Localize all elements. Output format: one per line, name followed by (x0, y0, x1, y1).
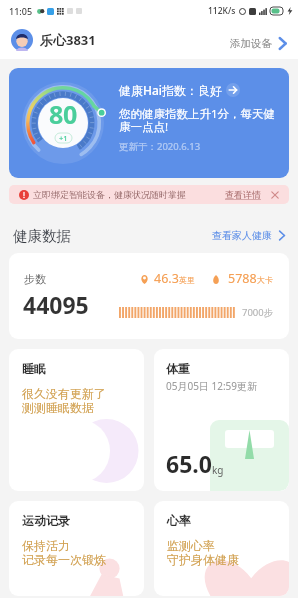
button[interactable]: 步数 (9, 253, 289, 339)
staticText: 查看家人健康 (212, 229, 272, 242)
staticText: 立即绑定智能设备，健康状况随时掌握 (33, 189, 186, 200)
button[interactable]: 添加设备 (230, 37, 290, 50)
staticText: 5788 (228, 270, 257, 287)
staticText: 健康Hai指数：良好 (119, 82, 223, 98)
staticText: 运动记录 (22, 513, 70, 528)
button[interactable]: 乐心3831 (11, 29, 96, 51)
staticText: 112K/s (208, 5, 236, 17)
button[interactable]: 查看详情 (225, 189, 261, 200)
staticText: 添加设备 (230, 37, 272, 50)
staticText: 44095 (23, 289, 89, 320)
staticText: 保持活力 记录每一次锻炼 (22, 538, 106, 567)
staticText: 05月05日 12:59更新 (166, 379, 258, 393)
staticText: 大卡 (257, 275, 273, 285)
staticText: 很久没有更新了 测测睡眠数据 (22, 386, 106, 415)
staticText: 11:05 (9, 5, 33, 17)
button[interactable]: 80 (9, 68, 289, 178)
other: Add device (277, 37, 290, 50)
staticText: 7000步 (242, 306, 274, 319)
staticText: +1 (59, 133, 68, 143)
staticText: 您的健康指数上升1分，每天健康一点点! (119, 106, 276, 134)
staticText: 英里 (179, 275, 195, 285)
button[interactable]: 查看家人健康 (212, 229, 288, 242)
staticText: 体重 (166, 361, 190, 376)
button[interactable]: 心率 (154, 501, 289, 596)
staticText: 健康数据 (13, 227, 71, 245)
button[interactable]: 立即绑定智能设备，健康状况随时掌握 (9, 185, 289, 204)
staticText: 乐心3831 (40, 31, 96, 49)
staticText: 80 (49, 97, 77, 131)
staticText: 心率 (167, 513, 191, 528)
button[interactable]: 睡眠 (9, 349, 144, 491)
button[interactable]: 体重 (154, 349, 289, 491)
staticText: kg (212, 463, 224, 477)
staticText: 更新于：2020.6.13 (119, 140, 201, 153)
button[interactable]: Close (271, 191, 279, 199)
staticText: 睡眠 (22, 361, 46, 376)
staticText: 步数 (24, 272, 46, 286)
button[interactable]: 运动记录 (9, 501, 144, 596)
staticText: 监测心率 守护身体健康 (167, 538, 239, 567)
staticText: 65.0 (166, 448, 212, 479)
staticText: 46.3 (154, 270, 179, 287)
